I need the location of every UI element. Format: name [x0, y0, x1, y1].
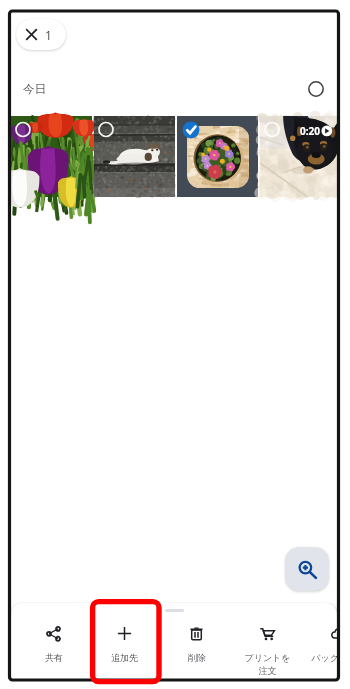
- staticText: 今日: [23, 82, 46, 96]
- staticText: 削除: [188, 652, 206, 663]
- staticText: バックアップ: [311, 652, 337, 663]
- button[interactable]: プリントを 注文: [232, 603, 303, 679]
- staticText: プリントを 注文: [244, 652, 291, 677]
- button[interactable]: Video dog: [260, 116, 337, 197]
- button[interactable]: Zoom in: [285, 547, 329, 591]
- button[interactable]: 削除: [161, 603, 232, 679]
- button[interactable]: Photo flowers selected: [177, 116, 258, 197]
- button[interactable]: バックアップ: [303, 603, 337, 679]
- button[interactable]: Select day: [306, 79, 326, 99]
- button[interactable]: Photo tulips: [11, 116, 92, 197]
- button[interactable]: 1: [16, 19, 66, 50]
- staticText: 0:20: [300, 124, 320, 138]
- button[interactable]: Photo cat: [94, 116, 175, 197]
- staticText: 共有: [45, 652, 63, 663]
- staticText: 追加先: [111, 652, 138, 663]
- button[interactable]: 追加先: [89, 603, 160, 679]
- button[interactable]: 共有: [18, 603, 89, 679]
- staticText: 1: [45, 27, 52, 43]
